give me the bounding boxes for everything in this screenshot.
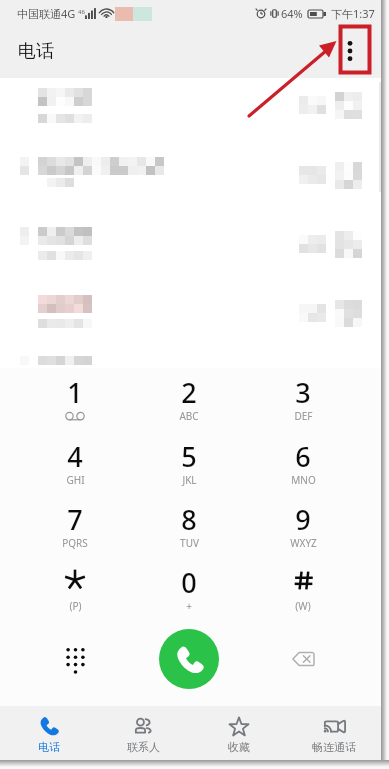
staticText: 4	[67, 438, 83, 470]
staticText: +	[186, 599, 192, 613]
button[interactable]	[0, 218, 381, 288]
button[interactable]	[18, 495, 132, 558]
button[interactable]	[246, 368, 360, 431]
button[interactable]: 电话	[0, 706, 96, 760]
button[interactable]: Backspace	[268, 627, 338, 691]
staticText: 5	[181, 438, 197, 470]
staticText: (W)	[295, 599, 311, 613]
staticText: (P)	[69, 599, 82, 613]
staticText: 中国联通4G	[17, 6, 76, 21]
staticText: ABC	[179, 409, 199, 423]
staticText: PQRS	[62, 536, 88, 550]
staticText: TUV	[180, 536, 199, 550]
staticText: 电话	[18, 40, 54, 63]
button[interactable]	[132, 432, 246, 495]
button[interactable]	[0, 358, 381, 368]
button[interactable]: 畅连通话	[286, 706, 381, 760]
button[interactable]	[132, 558, 246, 621]
staticText: 1	[67, 374, 83, 406]
staticText: 64%	[281, 6, 303, 21]
button[interactable]: Call	[159, 629, 219, 689]
button[interactable]	[246, 495, 360, 558]
button[interactable]	[0, 148, 381, 218]
button[interactable]	[0, 288, 381, 358]
staticText: 7	[67, 501, 83, 533]
button[interactable]	[18, 368, 132, 431]
staticText: WXYZ	[290, 536, 317, 550]
button[interactable]	[18, 558, 132, 621]
staticText: 8	[181, 501, 197, 533]
staticText: MNO	[291, 473, 316, 487]
staticText: 联系人	[127, 740, 160, 754]
button[interactable]	[0, 78, 381, 148]
staticText: 9	[295, 501, 311, 533]
button[interactable]	[246, 558, 360, 621]
button[interactable]: More options	[330, 31, 370, 71]
staticText: 畅连通话	[312, 740, 356, 754]
button[interactable]	[132, 495, 246, 558]
button[interactable]	[246, 432, 360, 495]
staticText: GHI	[66, 473, 85, 487]
button[interactable]: Hide keypad	[40, 627, 110, 691]
staticText: 0	[181, 564, 197, 596]
staticText: 46	[78, 8, 85, 16]
button[interactable]: 收藏	[191, 706, 286, 760]
button[interactable]: 联系人	[96, 706, 191, 760]
staticText: 6	[295, 438, 311, 470]
staticText: DEF	[294, 409, 313, 423]
staticText: 下午1:37	[331, 6, 375, 21]
button[interactable]	[132, 368, 246, 431]
staticText: 收藏	[228, 740, 250, 754]
staticText: 电话	[38, 740, 60, 754]
staticText: 2	[181, 374, 197, 406]
staticText: JKL	[182, 473, 197, 487]
staticText: 3	[295, 374, 311, 406]
button[interactable]	[18, 432, 132, 495]
